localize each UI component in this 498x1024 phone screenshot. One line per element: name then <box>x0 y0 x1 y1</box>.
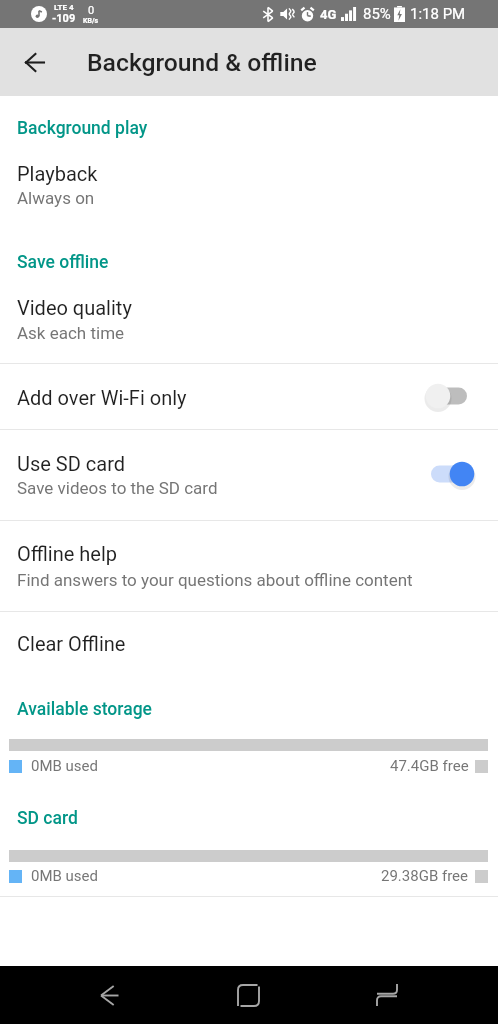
staticText: 4G <box>320 7 337 22</box>
button[interactable]: Toggle off <box>420 377 480 415</box>
staticText: 0MB used <box>31 867 99 885</box>
staticText: 85% <box>363 5 391 23</box>
staticText: Save videos to the SD card <box>17 478 218 498</box>
staticText: Add over Wi-Fi only <box>17 386 187 409</box>
button[interactable]: Navigate up <box>9 36 61 88</box>
staticText: Background & offline <box>87 48 317 77</box>
staticText: 1:18 PM <box>410 5 466 23</box>
staticText: SD card <box>17 808 78 829</box>
staticText: Playback <box>17 162 98 185</box>
staticText: 47.4GB free <box>390 757 469 775</box>
staticText: Ask each time <box>17 323 125 343</box>
staticText: 0 <box>88 4 95 17</box>
button[interactable]: Home <box>218 966 278 1024</box>
staticText: 29.38GB free <box>381 867 469 885</box>
staticText: Use SD card <box>17 452 126 475</box>
staticText: Save offline <box>17 252 109 273</box>
staticText: Clear Offline <box>17 632 126 655</box>
staticText: Background play <box>17 118 148 139</box>
staticText: 0MB used <box>31 757 99 775</box>
staticText: Find answers to your questions about off… <box>17 570 413 590</box>
staticText: Always on <box>17 188 95 208</box>
button[interactable]: Back <box>79 966 139 1024</box>
staticText: -109 <box>52 12 76 25</box>
button[interactable]: Recent apps <box>357 966 417 1024</box>
staticText: KB/s <box>83 17 99 25</box>
staticText: Offline help <box>17 542 118 565</box>
staticText: LTE 4 <box>54 3 74 12</box>
staticText: Video quality <box>17 296 132 319</box>
staticText: Available storage <box>17 699 153 720</box>
button[interactable]: Toggle on <box>420 455 480 493</box>
